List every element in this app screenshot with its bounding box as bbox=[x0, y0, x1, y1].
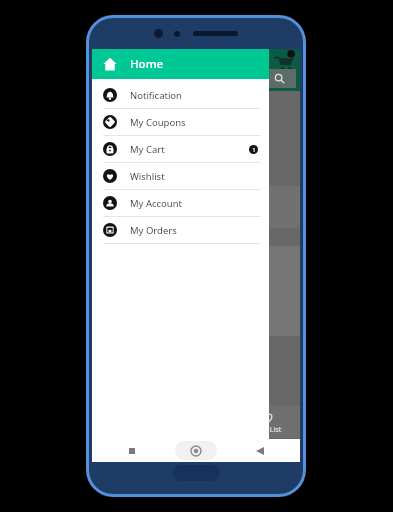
button[interactable]: My Orders bbox=[92, 217, 269, 244]
button[interactable]: Wish List bbox=[234, 406, 300, 438]
staticText: My Cart bbox=[130, 143, 165, 156]
staticText: My Orders bbox=[130, 224, 177, 237]
button[interactable]: Recents bbox=[122, 441, 142, 461]
staticText: 1 bbox=[252, 146, 256, 154]
staticText: Notification bbox=[130, 89, 182, 102]
button[interactable]: Notification bbox=[92, 82, 269, 109]
staticText: Home bbox=[130, 56, 164, 72]
staticText: My Account bbox=[130, 197, 183, 210]
staticText: My Coupons bbox=[130, 116, 186, 129]
button[interactable]: My Account bbox=[92, 190, 269, 217]
button[interactable]: My Coupons bbox=[92, 109, 269, 136]
staticText: Wish List bbox=[252, 425, 282, 435]
button[interactable]: My Cart bbox=[92, 136, 269, 163]
button[interactable]: Cart bbox=[272, 50, 296, 74]
button[interactable]: Wishlist bbox=[92, 163, 269, 190]
staticText: .00 bbox=[242, 209, 255, 221]
button[interactable]: Home bbox=[175, 441, 217, 460]
button[interactable]: Search bbox=[274, 73, 285, 84]
button[interactable]: Back bbox=[250, 441, 270, 461]
staticText: Wishlist bbox=[130, 170, 165, 183]
